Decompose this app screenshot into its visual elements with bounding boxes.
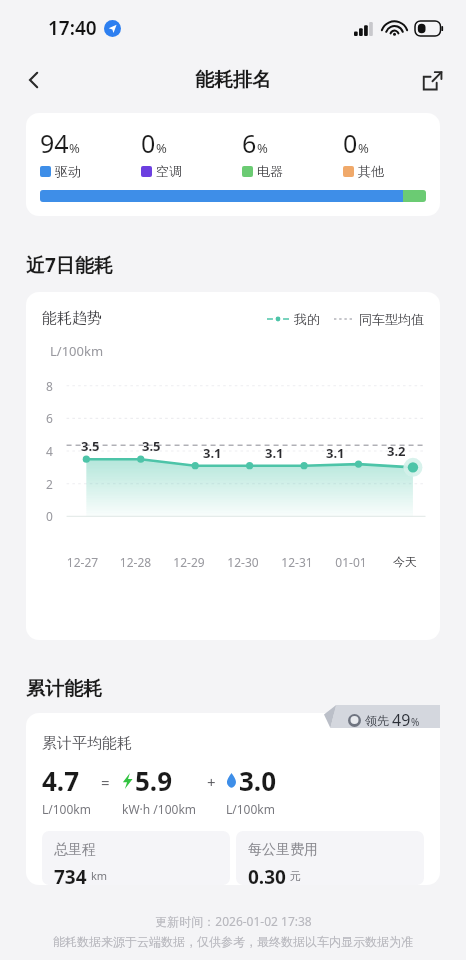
staticText: 空调 <box>156 163 182 179</box>
staticText: 3.1 <box>326 444 345 462</box>
staticText: 0 <box>46 508 53 524</box>
staticText: 我的 <box>294 311 320 327</box>
staticText: + <box>207 772 216 792</box>
staticText: L/100km <box>226 801 275 817</box>
button[interactable]: 94 <box>26 113 440 216</box>
staticText: % <box>411 715 420 729</box>
staticText: 12-28 <box>109 554 162 570</box>
staticText: 0 <box>141 126 156 160</box>
staticText: 驱动 <box>55 163 81 179</box>
staticText: 3.5 <box>142 437 161 455</box>
staticText: 4.7 <box>42 763 80 798</box>
staticText: 今天 <box>378 554 432 569</box>
staticText: 12-29 <box>162 554 216 570</box>
staticText: 2 <box>46 476 53 492</box>
staticText: 49 <box>392 709 411 731</box>
staticText: 总里程 <box>54 841 96 859</box>
button[interactable]: 总里程 <box>42 831 230 885</box>
staticText: 6 <box>46 410 53 426</box>
staticText: % <box>69 139 80 157</box>
staticText: 5.9 <box>135 763 173 798</box>
staticText: 0.30 <box>248 864 286 885</box>
staticText: 其他 <box>358 163 384 179</box>
staticText: % <box>257 139 268 157</box>
staticText: 3.1 <box>265 444 284 462</box>
staticText: 12-27 <box>56 554 109 570</box>
staticText: 6 <box>242 126 257 160</box>
staticText: 3.5 <box>81 437 100 455</box>
staticText: 12-31 <box>270 554 324 570</box>
staticText: L/100km <box>42 801 91 817</box>
staticText: 能耗数据来源于云端数据，仅供参考，最终数据以车内显示数据为准 <box>53 934 413 949</box>
staticText: 累计能耗 <box>26 677 102 701</box>
staticText: 3.0 <box>239 763 277 798</box>
staticText: L/100km <box>50 342 104 360</box>
staticText: 元 <box>290 869 301 883</box>
staticText: 3.1 <box>203 444 222 462</box>
staticText: % <box>358 139 369 157</box>
staticText: 4 <box>46 443 53 459</box>
staticText: 01-01 <box>324 554 378 570</box>
staticText: = <box>101 772 110 792</box>
staticText: 累计平均能耗 <box>42 734 132 753</box>
staticText: 同车型均值 <box>359 311 424 327</box>
staticText: 更新时间：2026-01-02 17:38 <box>155 913 312 929</box>
staticText: 0 <box>343 126 358 160</box>
staticText: 12-30 <box>216 554 270 570</box>
button[interactable]: 每公里费用 <box>236 831 424 885</box>
staticText: 17:40 <box>48 15 97 41</box>
staticText: 734 <box>54 864 87 885</box>
staticText: % <box>156 139 167 157</box>
staticText: 能耗排名 <box>195 68 271 92</box>
staticText: 3.2 <box>387 442 406 460</box>
staticText: 能耗趋势 <box>42 309 102 328</box>
button[interactable]: Share <box>412 60 452 100</box>
staticText: 8 <box>46 378 53 394</box>
staticText: 电器 <box>257 163 283 179</box>
button[interactable]: Back <box>14 60 54 100</box>
staticText: 领先 <box>365 713 389 728</box>
staticText: 近7日能耗 <box>26 252 113 278</box>
staticText: 94 <box>40 126 69 160</box>
staticText: kW·h /100km <box>122 801 197 817</box>
staticText: km <box>91 868 108 883</box>
staticText: 每公里费用 <box>248 841 318 859</box>
